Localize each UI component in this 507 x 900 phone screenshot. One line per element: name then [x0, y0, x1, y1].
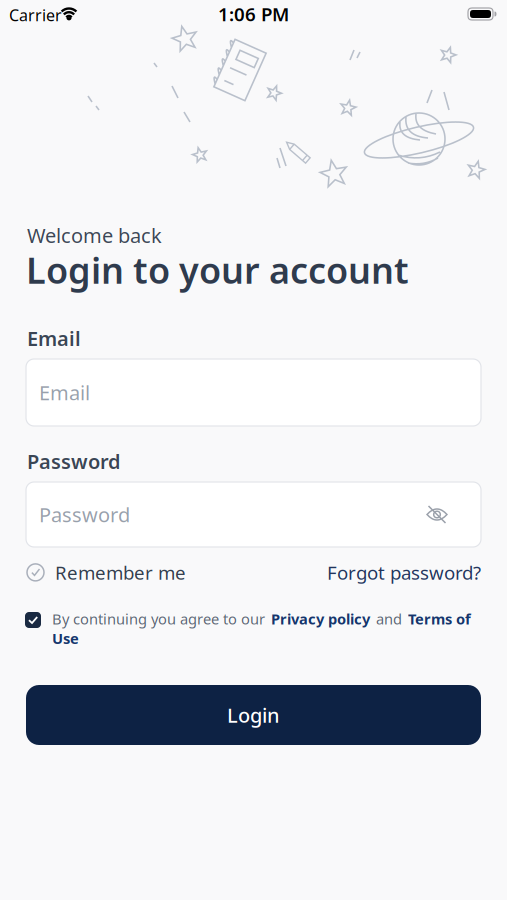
staticText: Privacy policy — [271, 609, 370, 628]
button[interactable]: Show password — [426, 504, 448, 524]
staticText: Password — [39, 501, 130, 528]
staticText: Carrier — [9, 4, 62, 26]
staticText: Forgot password? — [327, 560, 481, 585]
staticText: Remember me — [55, 560, 186, 585]
button[interactable]: Agree to terms — [25, 612, 41, 628]
button[interactable]: Login — [26, 685, 481, 745]
staticText: By continuing you agree to our — [52, 609, 269, 628]
staticText: Login — [227, 702, 280, 728]
staticText: Welcome back — [27, 222, 162, 249]
staticText: Email — [39, 379, 90, 406]
staticText: Password — [27, 448, 121, 475]
staticText: 1:06 PM — [218, 2, 289, 26]
staticText: Login to your account — [26, 246, 409, 294]
button[interactable]: Forgot password? — [327, 560, 481, 585]
staticText: and — [372, 609, 406, 628]
staticText: Terms of — [408, 609, 471, 628]
staticText: Email — [27, 325, 81, 352]
button[interactable]: Terms of — [408, 609, 471, 628]
button[interactable]: Terms of Use — [52, 628, 79, 648]
staticText: Use — [52, 628, 79, 648]
button[interactable]: Email — [26, 359, 481, 426]
button[interactable]: Password — [26, 482, 481, 547]
button[interactable]: Remember me — [26, 560, 186, 585]
button[interactable]: Privacy policy — [271, 609, 370, 628]
